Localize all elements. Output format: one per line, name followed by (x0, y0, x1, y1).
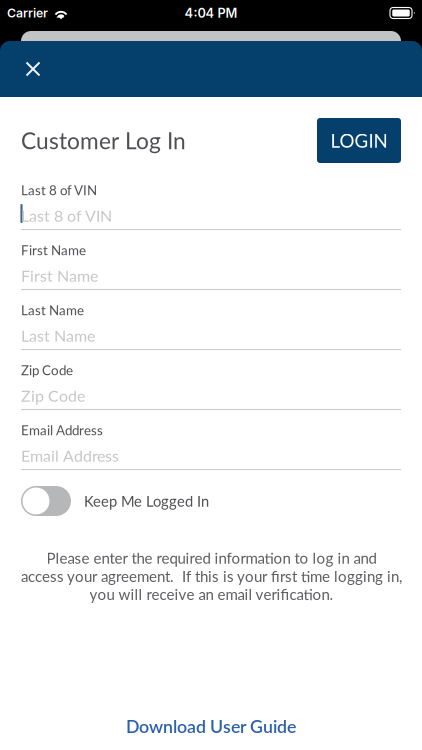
staticText: Last Name (21, 302, 84, 318)
button[interactable]: LOGIN (317, 118, 401, 163)
staticText: Email Address (21, 422, 103, 438)
staticText: Keep Me Logged In (84, 492, 209, 510)
staticText: Please enter the required information to… (46, 549, 376, 567)
button[interactable]: Close (11, 47, 55, 91)
staticText: 4:04 PM (184, 5, 237, 21)
staticText: Zip Code (21, 386, 85, 405)
staticText: Customer Log In (21, 127, 186, 154)
staticText: Email Address (21, 446, 119, 465)
staticText: Download User Guide (126, 716, 296, 737)
staticText: Last 8 of VIN (21, 206, 112, 225)
staticText: Carrier (7, 6, 48, 20)
staticText: Last Name (21, 326, 95, 345)
staticText: First Name (21, 242, 86, 258)
staticText: LOGIN (330, 129, 387, 152)
staticText: First Name (21, 266, 98, 285)
staticText: Last 8 of VIN (21, 182, 97, 198)
staticText: Zip Code (21, 362, 73, 378)
button[interactable]: Keep Me Logged In (21, 486, 401, 516)
staticText: you will receive an email verification. (89, 585, 333, 603)
staticText: access your agreement. If this is your f… (21, 567, 402, 585)
button[interactable]: Download User Guide (21, 707, 401, 745)
